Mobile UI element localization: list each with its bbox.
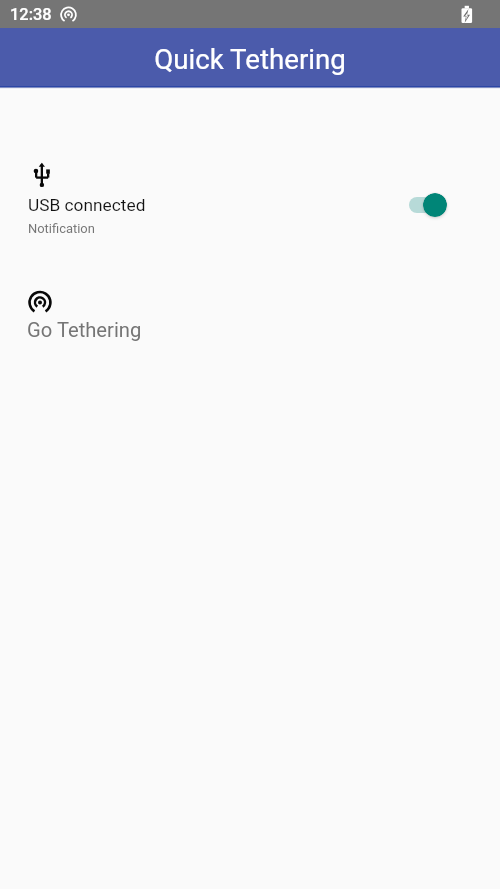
staticText: Go Tethering	[27, 318, 142, 342]
button[interactable]: USB tethering, on	[405, 188, 453, 222]
staticText: 12:38	[10, 5, 52, 24]
other: Hotspot active	[60, 6, 77, 23]
other: Battery charging	[459, 3, 473, 25]
staticText: Quick Tethering	[154, 43, 346, 75]
button[interactable]: USB connected	[0, 140, 500, 252]
staticText: Notification	[28, 221, 95, 236]
button[interactable]: Go Tethering	[0, 278, 500, 350]
staticText: USB connected	[28, 195, 146, 215]
